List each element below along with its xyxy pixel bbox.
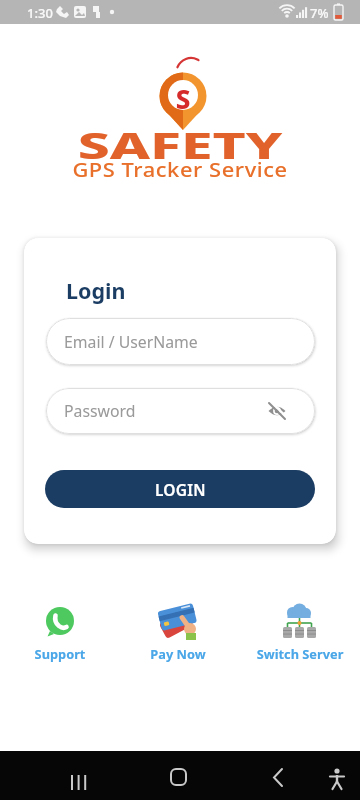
staticText: Support: [22, 645, 98, 662]
button[interactable]: Support: [22, 598, 98, 662]
staticText: 7%: [310, 4, 329, 22]
button[interactable]: Pay Now: [140, 598, 216, 662]
button[interactable]: [60, 759, 96, 793]
button[interactable]: [160, 759, 196, 793]
staticText: S: [171, 81, 195, 116]
button[interactable]: LOGIN: [45, 470, 315, 508]
staticText: Email / UserName: [64, 331, 198, 353]
button[interactable]: Switch Server: [245, 598, 355, 662]
staticText: Switch Server: [245, 645, 355, 662]
staticText: GPS Tracker Service: [0, 157, 360, 183]
button[interactable]: [319, 759, 355, 793]
staticText: Pay Now: [140, 645, 216, 662]
button[interactable]: [260, 759, 296, 793]
staticText: Password: [64, 400, 136, 422]
staticText: SAFETY: [0, 121, 360, 170]
staticText: LOGIN: [155, 479, 206, 500]
staticText: Login: [66, 276, 126, 305]
staticText: 1:30: [27, 4, 53, 22]
button[interactable]: Password: [46, 388, 315, 434]
button[interactable]: Email / UserName: [46, 318, 315, 365]
